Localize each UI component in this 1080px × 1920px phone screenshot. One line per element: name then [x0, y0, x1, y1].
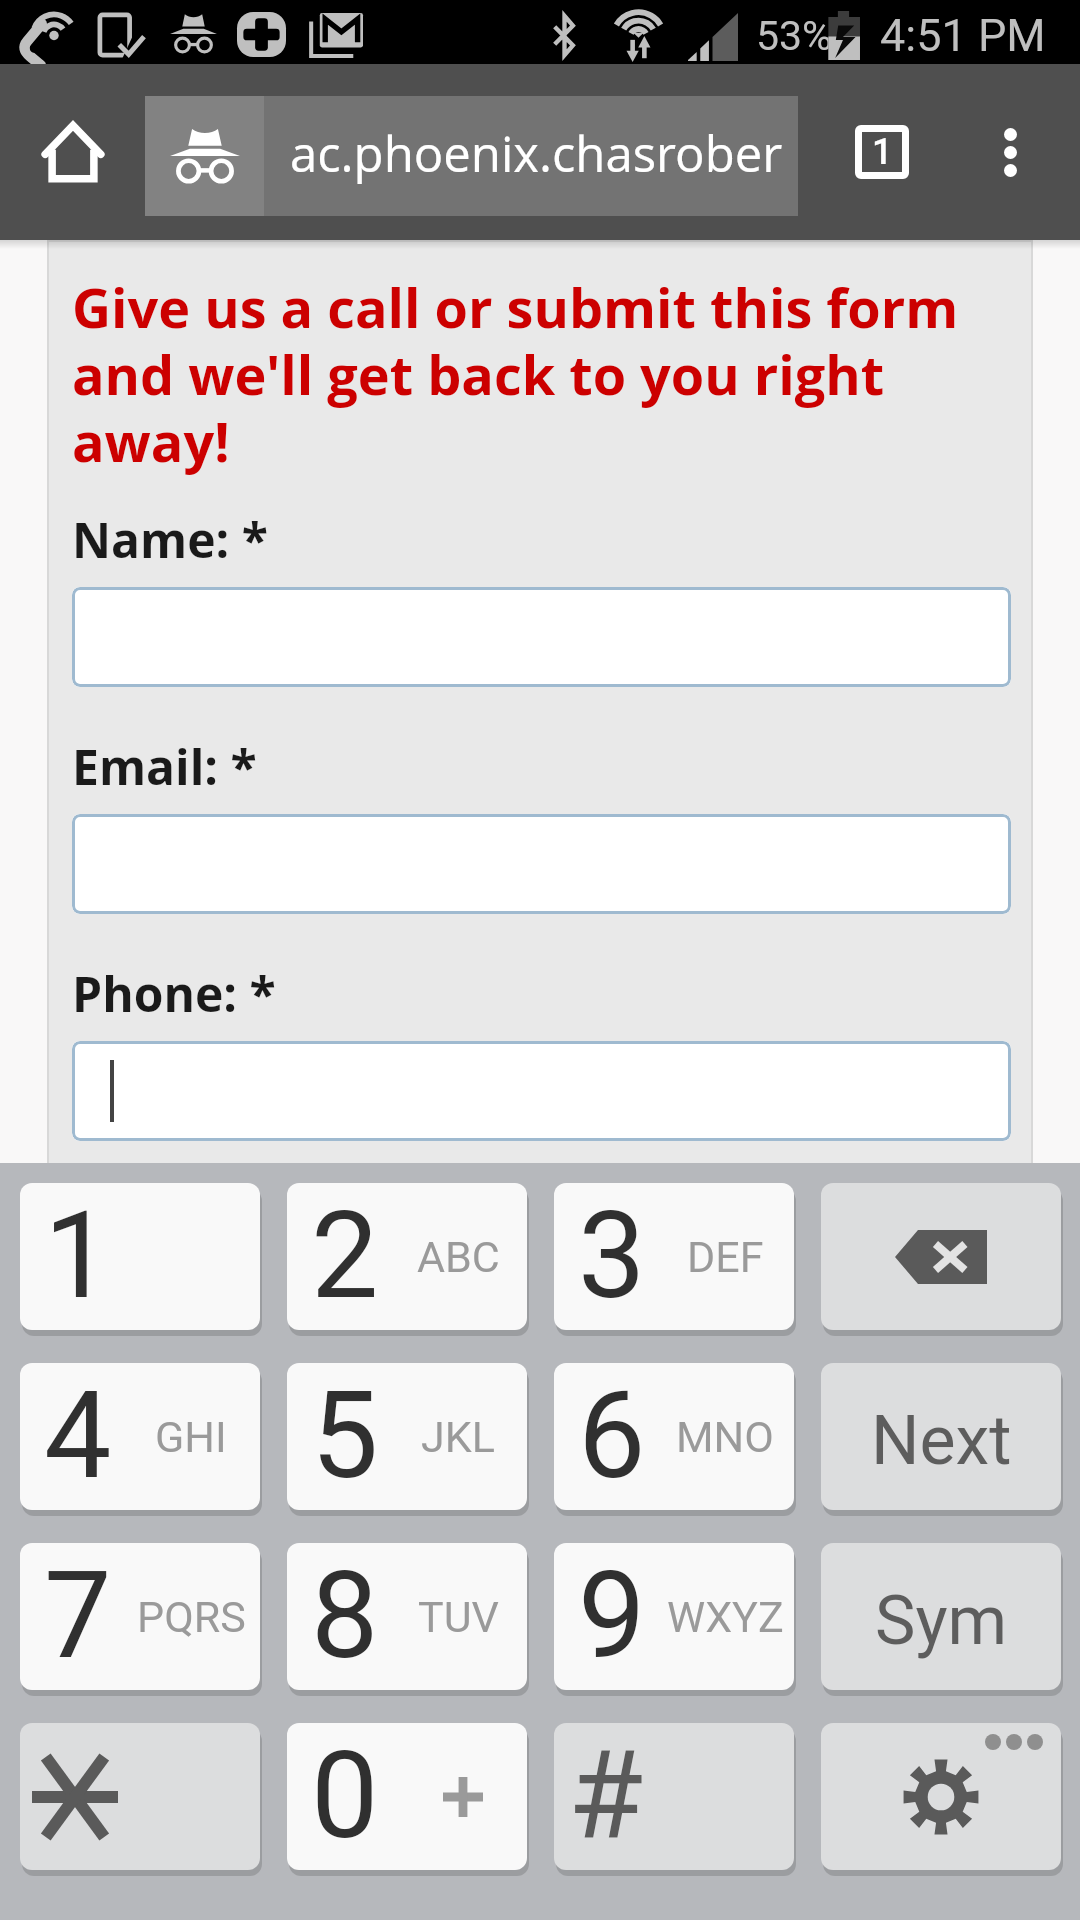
button[interactable]	[72, 1041, 1011, 1141]
staticText: TUV	[418, 1592, 499, 1642]
button[interactable]: 1	[20, 1183, 260, 1330]
button[interactable]: 6	[554, 1363, 794, 1510]
button[interactable]: Pound	[554, 1723, 794, 1870]
button[interactable]: 4	[20, 1363, 260, 1510]
staticText: Phone: *	[72, 961, 276, 1026]
staticText: PQRS	[137, 1592, 246, 1642]
button[interactable]: 7	[20, 1543, 260, 1690]
button[interactable]: More options	[960, 64, 1060, 240]
staticText: 2	[311, 1186, 379, 1327]
staticText: JKL	[421, 1412, 495, 1462]
staticText: MNO	[676, 1412, 774, 1462]
button[interactable]	[72, 814, 1011, 914]
staticText: 4	[44, 1366, 112, 1507]
button[interactable]: Tabs	[832, 64, 932, 240]
staticText: Sym	[875, 1581, 1008, 1661]
staticText: 4:51 PM	[880, 9, 1046, 62]
staticText: 1	[44, 1186, 112, 1327]
button[interactable]	[72, 587, 1011, 687]
staticText: 53%	[756, 12, 833, 60]
staticText: ABC	[417, 1232, 500, 1282]
staticText: Next	[871, 1401, 1012, 1481]
staticText: WXYZ	[667, 1592, 784, 1642]
staticText: GHI	[155, 1412, 227, 1462]
staticText: 6	[578, 1366, 646, 1507]
staticText: 0	[311, 1726, 379, 1867]
staticText: 3	[578, 1186, 646, 1327]
button[interactable]: 0	[287, 1723, 527, 1870]
button[interactable]: 8	[287, 1543, 527, 1690]
button[interactable]: 3	[554, 1183, 794, 1330]
button[interactable]: Sym	[821, 1543, 1061, 1690]
staticText: Name: *	[72, 507, 268, 572]
button[interactable]: Next	[821, 1363, 1061, 1510]
staticText: 5	[311, 1366, 379, 1507]
staticText: #	[568, 1725, 644, 1868]
staticText: 9	[578, 1546, 646, 1687]
staticText: ac.phoenix.chasrober	[290, 120, 783, 187]
staticText: Give us a call or submit this form and w…	[72, 270, 1011, 477]
button[interactable]: Backspace	[821, 1183, 1061, 1330]
button[interactable]: Home	[0, 64, 145, 240]
staticText: 8	[311, 1546, 379, 1687]
button[interactable]: Settings	[821, 1723, 1061, 1870]
button[interactable]: 9	[554, 1543, 794, 1690]
button[interactable]: ac.phoenix.chasrober	[145, 96, 798, 216]
button[interactable]: 2	[287, 1183, 527, 1330]
button[interactable]: 5	[287, 1363, 527, 1510]
staticText: 7	[44, 1546, 112, 1687]
staticText: DEF	[687, 1232, 764, 1282]
button[interactable]: Star	[20, 1723, 260, 1870]
staticText: 1	[872, 131, 893, 173]
staticText: Email: *	[72, 734, 257, 799]
